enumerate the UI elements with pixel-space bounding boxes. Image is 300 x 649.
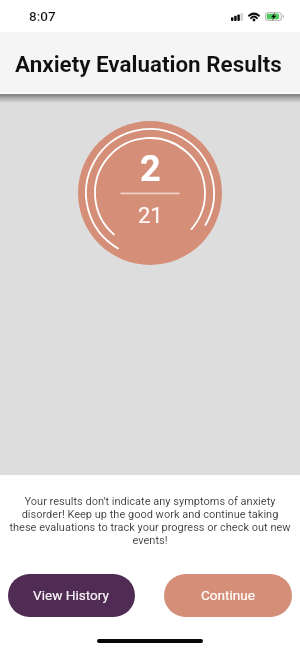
staticText: Your results don't indicate any symptoms… (8, 495, 292, 547)
staticText: Anxiety Evaluation Results (15, 51, 282, 77)
other: Battery charging (265, 12, 284, 21)
other: Cellular signal (231, 13, 243, 21)
staticText: View History (33, 587, 110, 603)
button[interactable]: View History (8, 574, 135, 617)
staticText: Continue (201, 587, 256, 603)
button[interactable]: Continue (164, 574, 292, 617)
staticText: 2 (140, 148, 161, 190)
other: Wi-Fi (248, 13, 260, 21)
staticText: 8:07 (29, 8, 56, 24)
staticText: 21 (138, 203, 163, 229)
